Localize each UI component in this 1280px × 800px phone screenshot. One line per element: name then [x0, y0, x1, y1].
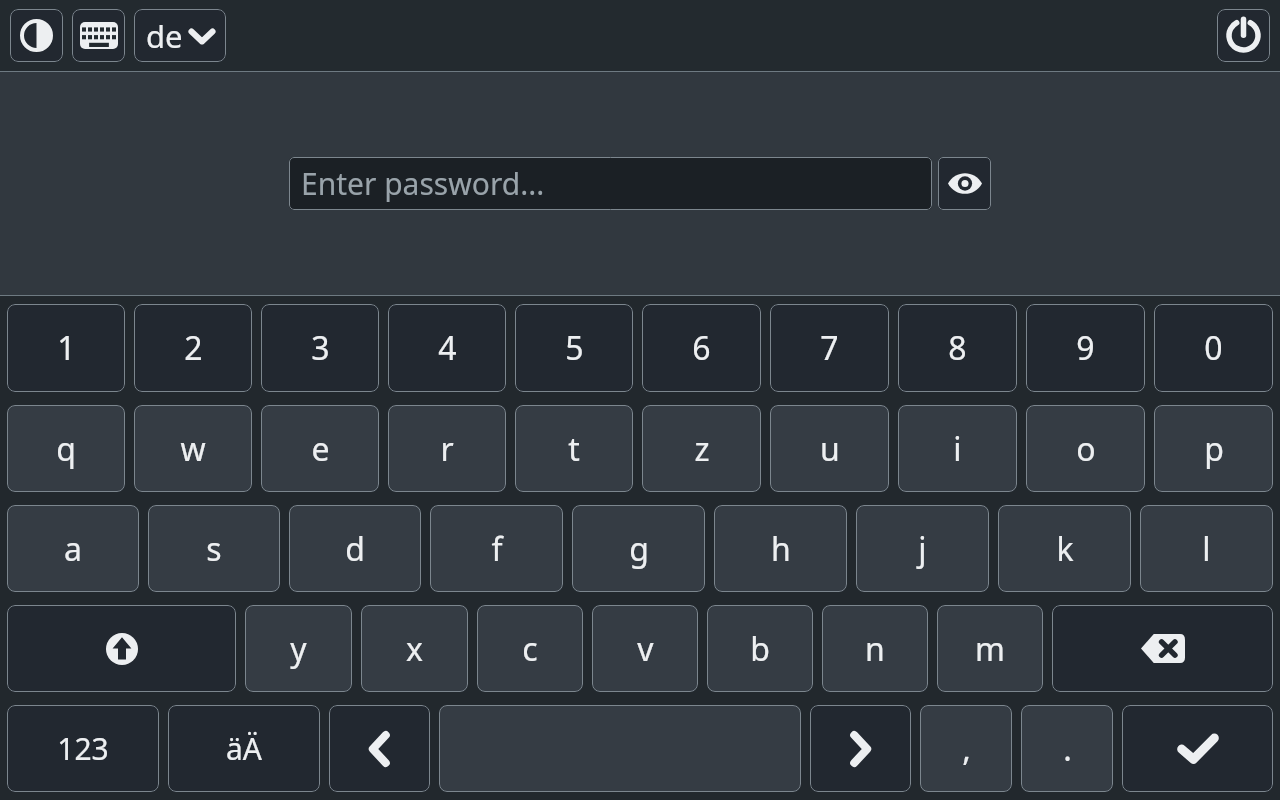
- button[interactable]: Cursor left: [329, 705, 430, 792]
- staticText: 0: [1204, 326, 1223, 370]
- button[interactable]: q: [7, 405, 125, 492]
- button[interactable]: Show password: [938, 157, 991, 210]
- button[interactable]: s: [148, 505, 280, 592]
- button[interactable]: ,: [920, 705, 1012, 792]
- button[interactable]: 9: [1026, 304, 1145, 392]
- button[interactable]: .: [1021, 705, 1113, 792]
- staticText: p: [1204, 427, 1224, 471]
- button[interactable]: e: [261, 405, 379, 492]
- button[interactable]: 2: [134, 304, 252, 392]
- staticText: .: [1063, 727, 1072, 771]
- button[interactable]: Contrast: [10, 9, 63, 62]
- button[interactable]: g: [572, 505, 705, 592]
- button[interactable]: m: [937, 605, 1043, 692]
- button[interactable]: f: [430, 505, 563, 592]
- staticText: 8: [948, 326, 967, 370]
- button[interactable]: 6: [642, 304, 761, 392]
- staticText: n: [865, 627, 885, 671]
- button[interactable]: de: [134, 9, 226, 62]
- button[interactable]: Shift: [7, 605, 236, 692]
- button[interactable]: 0: [1154, 304, 1273, 392]
- button[interactable]: v: [592, 605, 698, 692]
- staticText: 6: [692, 326, 711, 370]
- button[interactable]: Enter: [1122, 705, 1273, 792]
- button[interactable]: Backspace: [1052, 605, 1273, 692]
- button[interactable]: i: [898, 405, 1017, 492]
- staticText: z: [694, 427, 710, 471]
- button[interactable]: Keyboard layout: [72, 9, 125, 62]
- staticText: l: [1202, 527, 1211, 571]
- staticText: äÄ: [226, 728, 262, 769]
- button[interactable]: t: [515, 405, 633, 492]
- button[interactable]: 4: [388, 304, 506, 392]
- staticText: y: [290, 627, 307, 671]
- staticText: f: [491, 527, 503, 571]
- staticText: 1: [57, 326, 76, 370]
- staticText: 5: [565, 326, 584, 370]
- button[interactable]: b: [707, 605, 813, 692]
- staticText: 7: [820, 326, 839, 370]
- staticText: m: [975, 627, 1005, 671]
- staticText: 9: [1076, 326, 1095, 370]
- button[interactable]: k: [998, 505, 1131, 592]
- button[interactable]: 3: [261, 304, 379, 392]
- staticText: d: [345, 527, 365, 571]
- staticText: o: [1076, 427, 1096, 471]
- staticText: 123: [57, 728, 109, 769]
- button[interactable]: 7: [770, 304, 889, 392]
- staticText: i: [953, 427, 962, 471]
- button[interactable]: 123: [7, 705, 159, 792]
- button[interactable]: 5: [515, 304, 633, 392]
- button[interactable]: 8: [898, 304, 1017, 392]
- button[interactable]: äÄ: [168, 705, 320, 792]
- button[interactable]: h: [714, 505, 847, 592]
- staticText: h: [771, 527, 791, 571]
- button[interactable]: Power: [1217, 9, 1270, 62]
- button[interactable]: x: [361, 605, 468, 692]
- staticText: a: [64, 527, 82, 571]
- staticText: u: [820, 427, 840, 471]
- staticText: t: [568, 427, 580, 471]
- button[interactable]: j: [856, 505, 989, 592]
- staticText: k: [1056, 527, 1074, 571]
- button[interactable]: z: [642, 405, 761, 492]
- staticText: r: [440, 427, 454, 471]
- button[interactable]: a: [7, 505, 139, 592]
- staticText: 4: [438, 326, 457, 370]
- button[interactable]: w: [134, 405, 252, 492]
- button[interactable]: 1: [7, 304, 125, 392]
- button[interactable]: l: [1140, 505, 1273, 592]
- button[interactable]: Enter password...: [289, 157, 932, 210]
- staticText: ,: [962, 727, 971, 771]
- staticText: g: [629, 527, 649, 571]
- staticText: b: [750, 627, 770, 671]
- button[interactable]: y: [245, 605, 352, 692]
- button[interactable]: c: [477, 605, 583, 692]
- staticText: 2: [184, 326, 203, 370]
- staticText: j: [918, 527, 927, 571]
- staticText: q: [56, 427, 76, 471]
- staticText: 3: [311, 326, 330, 370]
- staticText: c: [522, 627, 538, 671]
- button[interactable]: d: [289, 505, 421, 592]
- button[interactable]: u: [770, 405, 889, 492]
- button[interactable]: r: [388, 405, 506, 492]
- staticText: Enter password...: [301, 163, 545, 204]
- button[interactable]: p: [1154, 405, 1273, 492]
- staticText: s: [206, 527, 222, 571]
- button[interactable]: [439, 705, 801, 792]
- button[interactable]: n: [822, 605, 928, 692]
- staticText: de: [146, 15, 183, 57]
- button[interactable]: Cursor right: [810, 705, 911, 792]
- staticText: w: [180, 427, 206, 471]
- staticText: v: [637, 627, 654, 671]
- staticText: x: [406, 627, 423, 671]
- staticText: e: [311, 427, 330, 471]
- button[interactable]: o: [1026, 405, 1145, 492]
